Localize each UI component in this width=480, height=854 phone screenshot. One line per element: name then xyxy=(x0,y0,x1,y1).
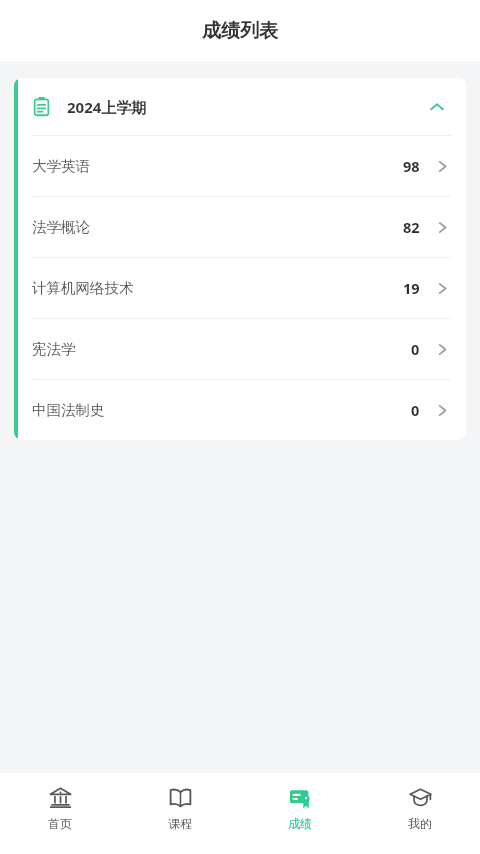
staticText: 我的 xyxy=(408,816,432,831)
button[interactable]: 法学概论 xyxy=(18,197,466,257)
button[interactable]: 中国法制史 xyxy=(18,380,466,440)
button[interactable]: 2024上学期 xyxy=(18,78,466,135)
staticText: 82 xyxy=(403,217,420,237)
button[interactable]: 我的 xyxy=(360,773,480,854)
other: Collapse xyxy=(426,96,448,118)
staticText: 2024上学期 xyxy=(67,97,147,117)
staticText: 中国法制史 xyxy=(32,401,105,419)
button[interactable]: 首页 xyxy=(0,773,120,854)
staticText: 成绩列表 xyxy=(202,19,278,43)
staticText: 法学概论 xyxy=(32,218,90,236)
staticText: 宪法学 xyxy=(32,340,76,358)
staticText: 0 xyxy=(411,339,420,359)
button[interactable]: 宪法学 xyxy=(18,319,466,379)
staticText: 课程 xyxy=(168,816,192,831)
button[interactable]: 大学英语 xyxy=(18,136,466,196)
button[interactable]: 成绩 xyxy=(240,773,360,854)
button[interactable]: 计算机网络技术 xyxy=(18,258,466,318)
staticText: 0 xyxy=(411,400,420,420)
staticText: 成绩 xyxy=(288,816,312,831)
staticText: 19 xyxy=(403,278,420,298)
staticText: 大学英语 xyxy=(32,157,90,175)
staticText: 首页 xyxy=(48,816,72,831)
button[interactable]: 课程 xyxy=(120,773,240,854)
staticText: 计算机网络技术 xyxy=(32,279,134,297)
staticText: 98 xyxy=(403,156,420,176)
